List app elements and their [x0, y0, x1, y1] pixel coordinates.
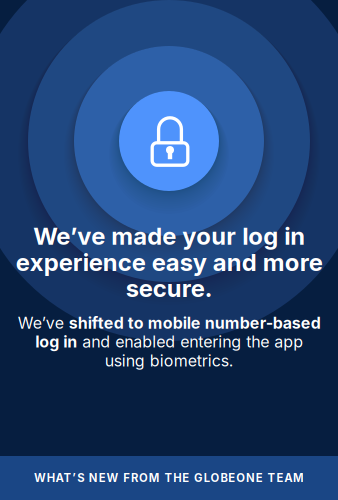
- staticText: We’ve made your log in experience easy a…: [15, 223, 322, 301]
- staticText: WHAT’S NEW FROM THE GLOBEONE TEAM: [34, 471, 304, 485]
- staticText: We’ve shifted to mobile number-based log…: [17, 313, 320, 370]
